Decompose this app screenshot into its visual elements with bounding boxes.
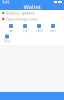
staticText: More xyxy=(49,29,56,32)
staticText: Payment due soon xyxy=(6,16,37,22)
staticText: Balance updated xyxy=(6,10,34,16)
staticText: Cards xyxy=(35,29,42,32)
staticText: Scan xyxy=(8,29,13,32)
staticText: Bills xyxy=(4,39,10,43)
staticText: Wallet xyxy=(23,3,40,11)
staticText: 9:41 xyxy=(2,0,9,5)
staticText: Pay xyxy=(23,29,27,32)
